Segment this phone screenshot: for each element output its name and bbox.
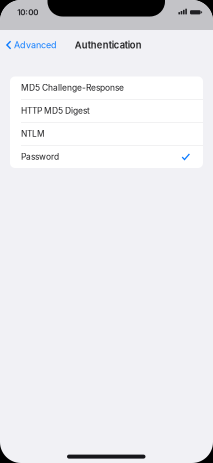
- staticText: Authentication: [75, 39, 142, 51]
- button[interactable]: HTTP MD5 Digest: [10, 99, 203, 122]
- button[interactable]: MD5 Challenge-Response: [10, 76, 203, 99]
- button[interactable]: Advanced: [0, 34, 62, 56]
- staticText: Password: [21, 152, 59, 162]
- staticText: Advanced: [14, 40, 56, 50]
- button[interactable]: NTLM: [10, 122, 203, 145]
- staticText: MD5 Challenge-Response: [21, 83, 124, 93]
- staticText: 10:00: [17, 7, 38, 17]
- staticText: NTLM: [21, 129, 45, 139]
- staticText: HTTP MD5 Digest: [21, 106, 90, 116]
- button[interactable]: Password: [10, 145, 203, 168]
